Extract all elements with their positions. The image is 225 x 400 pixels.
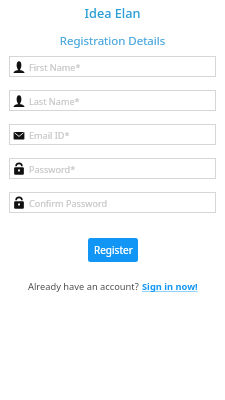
staticText: Registration Details [0,33,225,49]
other: Person [13,95,25,107]
staticText: Confirm Password [29,197,108,209]
staticText: Password* [29,163,76,175]
staticText: Idea Elan [0,4,225,21]
other: Email [13,129,25,141]
button[interactable]: Email ID* [9,124,216,145]
other: Person [13,61,25,73]
button[interactable]: Confirm Password [9,192,216,213]
staticText: First Name* [29,61,81,73]
staticText: Already have an account? [28,280,142,293]
staticText: Register [94,243,133,257]
button[interactable]: Sign in now! [142,280,198,293]
other: Password [13,197,25,209]
other: Password [13,163,25,175]
staticText: Email ID* [29,129,70,141]
button[interactable]: Last Name* [9,90,216,111]
staticText: Last Name* [29,95,80,107]
button[interactable]: Register [88,238,138,262]
button[interactable]: Password* [9,158,216,179]
button[interactable]: First Name* [9,56,216,77]
